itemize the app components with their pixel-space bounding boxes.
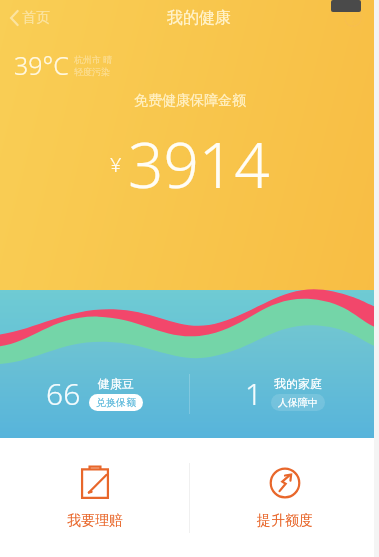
staticText: 我的健康 [167,8,231,28]
button[interactable]: File a claim [0,438,189,557]
button[interactable]: Increase limit [190,438,379,557]
staticText: 首页 [22,9,50,27]
staticText: 1 [245,373,263,414]
staticText: 兑换保额 [96,396,136,409]
staticText: ? [351,11,356,26]
button[interactable]: 66 [0,367,189,420]
staticText: 轻度污染 [74,66,110,77]
staticText: 人保障中 [278,396,318,409]
staticText: 免费健康保障金额 [134,92,246,110]
staticText: 杭州市 晴 [74,53,113,65]
button[interactable]: 1 [190,367,379,420]
staticText: 提升额度 [257,512,313,530]
button[interactable]: 首页 [0,0,60,36]
staticText: 3914 [128,122,270,206]
staticText: 39°C [14,48,69,82]
staticText: 健康豆 [98,376,134,391]
staticText: 我的家庭 [274,376,322,391]
staticText: ¥ [110,151,122,178]
staticText: 66 [46,373,81,414]
button[interactable]: Help [339,4,367,32]
staticText: 我要理赔 [67,512,123,530]
